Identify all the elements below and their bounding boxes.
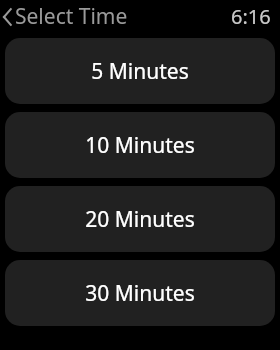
button[interactable]: 10 Minutes: [5, 112, 275, 178]
staticText: 20 Minutes: [85, 205, 195, 234]
button[interactable]: 30 Minutes: [5, 260, 275, 326]
button[interactable]: 5 Minutes: [5, 38, 275, 104]
staticText: 6:16: [231, 3, 271, 30]
staticText: 30 Minutes: [85, 279, 195, 308]
button[interactable]: Back: [0, 0, 128, 33]
staticText: 10 Minutes: [85, 131, 195, 160]
staticText: 5 Minutes: [91, 57, 189, 86]
button[interactable]: 20 Minutes: [5, 186, 275, 252]
staticText: Select Time: [15, 2, 128, 31]
